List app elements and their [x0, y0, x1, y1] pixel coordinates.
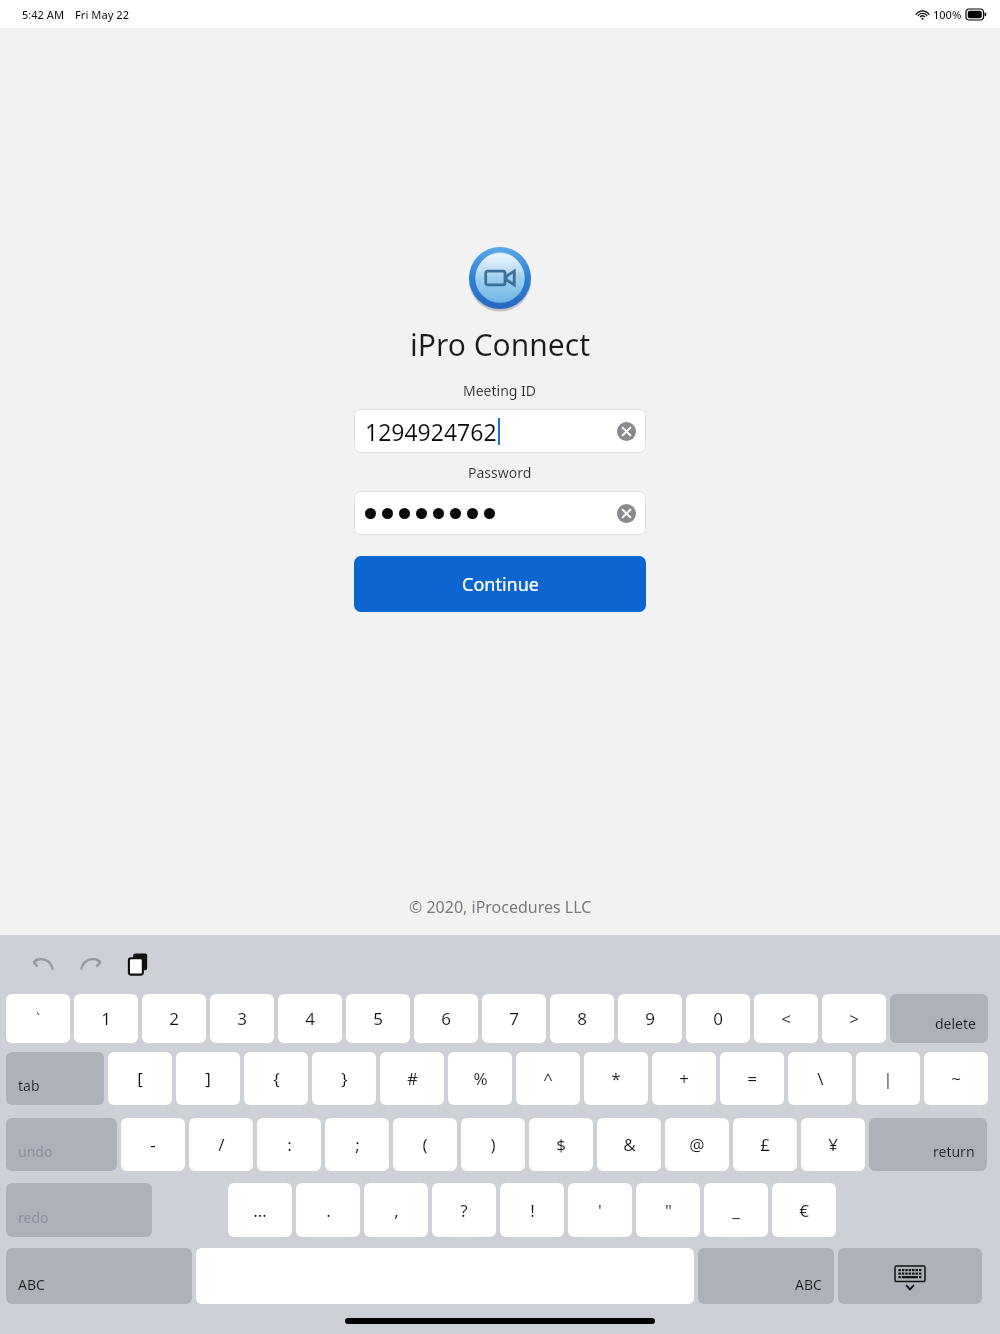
staticText: ): [490, 1133, 496, 1156]
button[interactable]: ?: [432, 1183, 496, 1237]
staticText: iPro Connect: [410, 324, 590, 365]
button[interactable]: ^: [516, 1052, 580, 1105]
staticText: ¥: [828, 1133, 838, 1156]
button[interactable]: :: [257, 1118, 321, 1171]
button[interactable]: }: [312, 1052, 376, 1105]
button[interactable]: ': [568, 1183, 632, 1237]
button[interactable]: Clear text: [616, 421, 636, 441]
staticText: ': [598, 1199, 602, 1222]
staticText: return: [933, 1142, 975, 1161]
staticText: #: [407, 1067, 418, 1090]
button[interactable]: 3: [210, 994, 274, 1043]
button[interactable]: 1: [74, 994, 138, 1043]
button[interactable]: +: [652, 1052, 716, 1105]
button[interactable]: <: [754, 994, 818, 1043]
button[interactable]: {: [244, 1052, 308, 1105]
button[interactable]: ": [636, 1183, 700, 1237]
button[interactable]: @: [665, 1118, 729, 1171]
staticText: /: [218, 1133, 225, 1156]
staticText: &: [623, 1133, 636, 1156]
button[interactable]: \: [788, 1052, 852, 1105]
button[interactable]: redo: [6, 1183, 152, 1237]
staticText: \: [817, 1067, 824, 1090]
staticText: redo: [18, 1208, 49, 1227]
staticText: 3: [237, 1007, 247, 1030]
button[interactable]: !: [500, 1183, 564, 1237]
button[interactable]: Clear text: [354, 491, 646, 535]
button[interactable]: €: [772, 1183, 836, 1237]
button[interactable]: .: [296, 1183, 360, 1237]
button[interactable]: Continue: [354, 556, 646, 612]
button[interactable]: (: [393, 1118, 457, 1171]
staticText: Meeting ID: [463, 381, 537, 400]
button[interactable]: ~: [924, 1052, 988, 1105]
button[interactable]: £: [733, 1118, 797, 1171]
button[interactable]: ABC: [6, 1248, 192, 1304]
staticText: !: [530, 1199, 535, 1222]
staticText: :: [287, 1133, 292, 1156]
button[interactable]: 1294924762: [354, 409, 646, 453]
staticText: [: [137, 1067, 143, 1090]
staticText: +: [679, 1067, 689, 1090]
staticText: 7: [509, 1007, 519, 1030]
button[interactable]: ): [461, 1118, 525, 1171]
button[interactable]: 8: [550, 994, 614, 1043]
button[interactable]: ;: [325, 1118, 389, 1171]
staticText: @: [689, 1133, 705, 1156]
staticText: |: [883, 1067, 893, 1090]
staticText: ,: [394, 1199, 399, 1222]
staticText: }: [341, 1067, 348, 1090]
button[interactable]: Redo: [68, 941, 114, 987]
staticText: ABC: [18, 1275, 45, 1294]
button[interactable]: return: [869, 1118, 987, 1171]
button[interactable]: ¥: [801, 1118, 865, 1171]
button[interactable]: delete: [890, 994, 988, 1043]
button[interactable]: Undo: [20, 941, 66, 987]
button[interactable]: _: [704, 1183, 768, 1237]
staticText: 2: [169, 1007, 179, 1030]
button[interactable]: =: [720, 1052, 784, 1105]
button[interactable]: -: [121, 1118, 185, 1171]
button[interactable]: Paste: [116, 941, 162, 987]
button[interactable]: ,: [364, 1183, 428, 1237]
staticText: 9: [645, 1007, 655, 1030]
staticText: 1294924762: [365, 416, 497, 447]
button[interactable]: 9: [618, 994, 682, 1043]
button[interactable]: #: [380, 1052, 444, 1105]
button[interactable]: *: [584, 1052, 648, 1105]
button[interactable]: &: [597, 1118, 661, 1171]
button[interactable]: >: [822, 994, 886, 1043]
button[interactable]: 4: [278, 994, 342, 1043]
staticText: delete: [935, 1014, 976, 1033]
button[interactable]: |: [856, 1052, 920, 1105]
staticText: >: [849, 1007, 859, 1030]
button[interactable]: $: [529, 1118, 593, 1171]
staticText: _: [732, 1199, 740, 1222]
staticText: *: [611, 1067, 621, 1090]
button[interactable]: `: [6, 994, 70, 1043]
button[interactable]: %: [448, 1052, 512, 1105]
button[interactable]: tab: [6, 1052, 104, 1105]
button[interactable]: undo: [6, 1118, 117, 1171]
button[interactable]: Clear text: [616, 503, 636, 523]
button[interactable]: /: [189, 1118, 253, 1171]
staticText: €: [799, 1199, 809, 1222]
staticText: -: [150, 1133, 156, 1156]
button[interactable]: 5: [346, 994, 410, 1043]
staticText: ABC: [795, 1275, 822, 1294]
button[interactable]: 6: [414, 994, 478, 1043]
staticText: 4: [305, 1007, 315, 1030]
button[interactable]: 0: [686, 994, 750, 1043]
staticText: Continue: [462, 572, 539, 597]
staticText: `: [36, 1009, 40, 1028]
button[interactable]: …: [228, 1183, 292, 1237]
button[interactable]: ]: [176, 1052, 240, 1105]
staticText: ": [665, 1199, 672, 1222]
button[interactable]: Hide keyboard: [838, 1248, 982, 1304]
button[interactable]: [: [108, 1052, 172, 1105]
staticText: tab: [18, 1076, 40, 1095]
button[interactable]: ABC: [698, 1248, 834, 1304]
button[interactable]: 7: [482, 994, 546, 1043]
button[interactable]: 2: [142, 994, 206, 1043]
